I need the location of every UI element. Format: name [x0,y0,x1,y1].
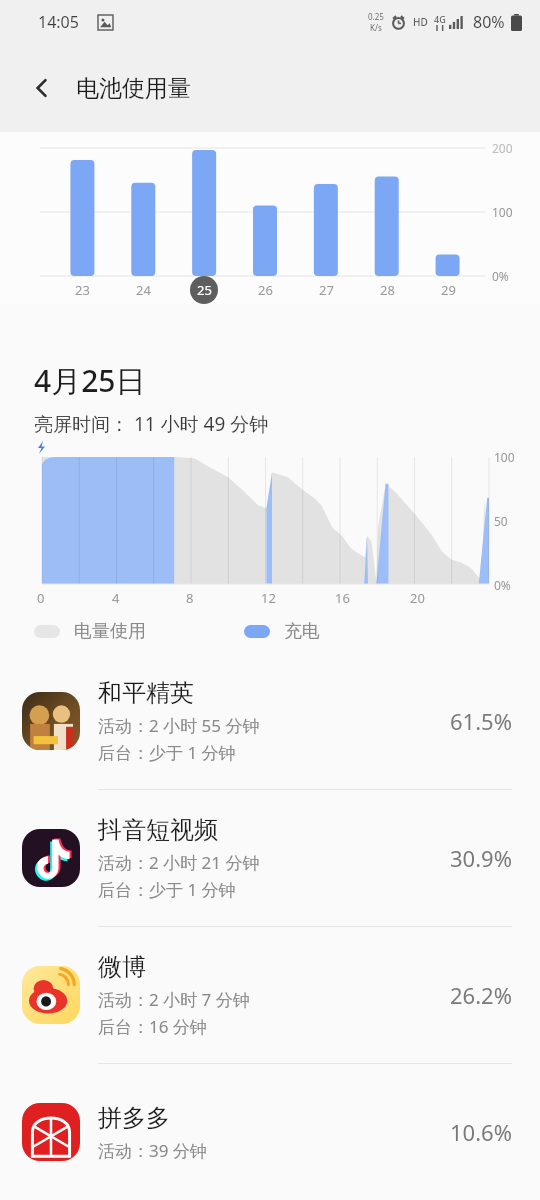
staticText: 28 [380,281,395,299]
staticText: 50 [494,513,508,529]
staticText: 充电 [284,620,320,643]
staticText: 4G [434,13,446,25]
staticText: HD [413,15,428,29]
staticText: 和平精英 [98,678,194,708]
staticText: 电池使用量 [76,74,191,103]
staticText: 30.9% [450,843,512,873]
staticText: 14:05 [38,11,79,33]
staticText: 8 [186,589,194,607]
staticText: 25 [197,281,212,299]
staticText: 80% [473,11,505,33]
staticText: K/s [370,22,382,33]
button[interactable]: 25 [190,276,218,304]
staticText: 活动：39 分钟 [98,1139,207,1162]
staticText: 微博 [98,952,146,982]
staticText: 100 [494,449,515,465]
staticText: 后台：少于 1 分钟 [98,878,236,901]
button[interactable]: 29 [434,276,462,304]
staticText: 拼多多 [98,1103,170,1133]
button[interactable]: 微博 [0,927,540,1063]
staticText: 亮屏时间： 11 小时 49 分钟 [34,411,269,437]
staticText: 27 [319,281,334,299]
staticText: 4 [112,589,120,607]
staticText: 10.6% [450,1117,512,1147]
staticText: 0% [494,577,511,593]
staticText: 61.5% [450,706,512,736]
staticText: 活动：2 小时 7 分钟 [98,988,250,1011]
staticText: 后台：16 分钟 [98,1015,207,1038]
button[interactable]: 和平精英 [0,653,540,789]
staticText: 0.25 [368,11,384,22]
button[interactable]: 28 [373,276,401,304]
staticText: 20 [410,589,425,607]
button[interactable]: 26 [251,276,279,304]
staticText: 后台：少于 1 分钟 [98,741,236,764]
button[interactable]: 27 [312,276,340,304]
staticText: 23 [75,281,90,299]
staticText: 活动：2 小时 21 分钟 [98,851,260,874]
staticText: 24 [136,281,151,299]
staticText: 100 [492,204,513,220]
staticText: 12 [261,589,276,607]
button[interactable]: 24 [129,276,157,304]
button[interactable]: Back [18,64,66,112]
staticText: 200 [492,140,513,156]
staticText: 4月25日 [34,360,146,401]
staticText: 26.2% [450,980,512,1010]
staticText: 抖音短视频 [98,815,218,845]
button[interactable]: 23 [68,276,96,304]
staticText: 活动：2 小时 55 分钟 [98,714,260,737]
staticText: 电量使用 [74,620,146,643]
staticText: 26 [258,281,273,299]
button[interactable]: 拼多多 [0,1064,540,1200]
staticText: 0 [37,589,45,607]
staticText: 0% [492,268,509,284]
staticText: 16 [335,589,350,607]
button[interactable]: 抖音短视频 [0,790,540,926]
staticText: 29 [441,281,456,299]
